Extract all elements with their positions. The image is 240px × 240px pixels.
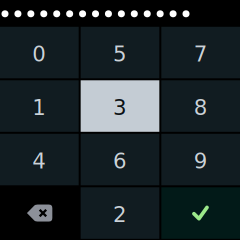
button[interactable]: 5: [81, 27, 159, 78]
button[interactable]: 0: [0, 27, 79, 78]
staticText: 3: [113, 95, 127, 120]
button[interactable]: 8: [161, 80, 240, 132]
button[interactable]: 9: [161, 134, 240, 185]
staticText: 5: [113, 42, 127, 66]
button[interactable]: 7: [161, 27, 240, 78]
staticText: 0: [32, 42, 46, 66]
button[interactable]: 4: [0, 134, 79, 185]
button[interactable]: Confirm: [161, 187, 240, 239]
button[interactable]: Delete: [0, 187, 79, 239]
button[interactable]: 6: [81, 134, 159, 185]
button[interactable]: 1: [0, 80, 79, 132]
staticText: 7: [194, 42, 208, 66]
button[interactable]: 3: [81, 80, 159, 132]
staticText: 6: [113, 149, 127, 173]
staticText: 8: [194, 95, 208, 120]
staticText: 4: [32, 149, 46, 173]
staticText: 2: [113, 202, 127, 227]
button[interactable]: 2: [81, 187, 159, 239]
staticText: 1: [32, 95, 46, 120]
staticText: 9: [194, 149, 208, 173]
